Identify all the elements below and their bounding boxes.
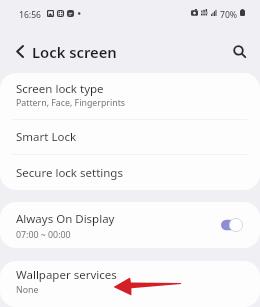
button[interactable]: Secure lock settings <box>0 155 260 190</box>
button[interactable]: Screen lock type <box>0 73 260 119</box>
staticText: Smart Lock <box>16 129 77 145</box>
staticText: 16:56 <box>19 9 42 21</box>
staticText: Lock screen <box>32 42 117 62</box>
button[interactable]: Navigate up <box>9 36 31 58</box>
staticText: Screen lock type <box>16 81 104 97</box>
button[interactable]: Search <box>228 36 250 58</box>
staticText: Secure lock settings <box>16 165 123 181</box>
staticText: 70% <box>220 9 238 21</box>
button[interactable]: Always On Display <box>0 202 260 248</box>
button[interactable]: Always On Display toggle <box>221 217 245 233</box>
staticText: Pattern, Face, Fingerprints <box>16 97 126 109</box>
staticText: Always On Display <box>16 211 115 227</box>
staticText: 07:00 ~ 00:00 <box>16 229 71 241</box>
button[interactable]: Smart Lock <box>0 120 260 154</box>
button[interactable]: Wallpaper services <box>0 261 260 307</box>
staticText: Wallpaper services <box>16 267 117 283</box>
staticText: None <box>16 284 39 296</box>
